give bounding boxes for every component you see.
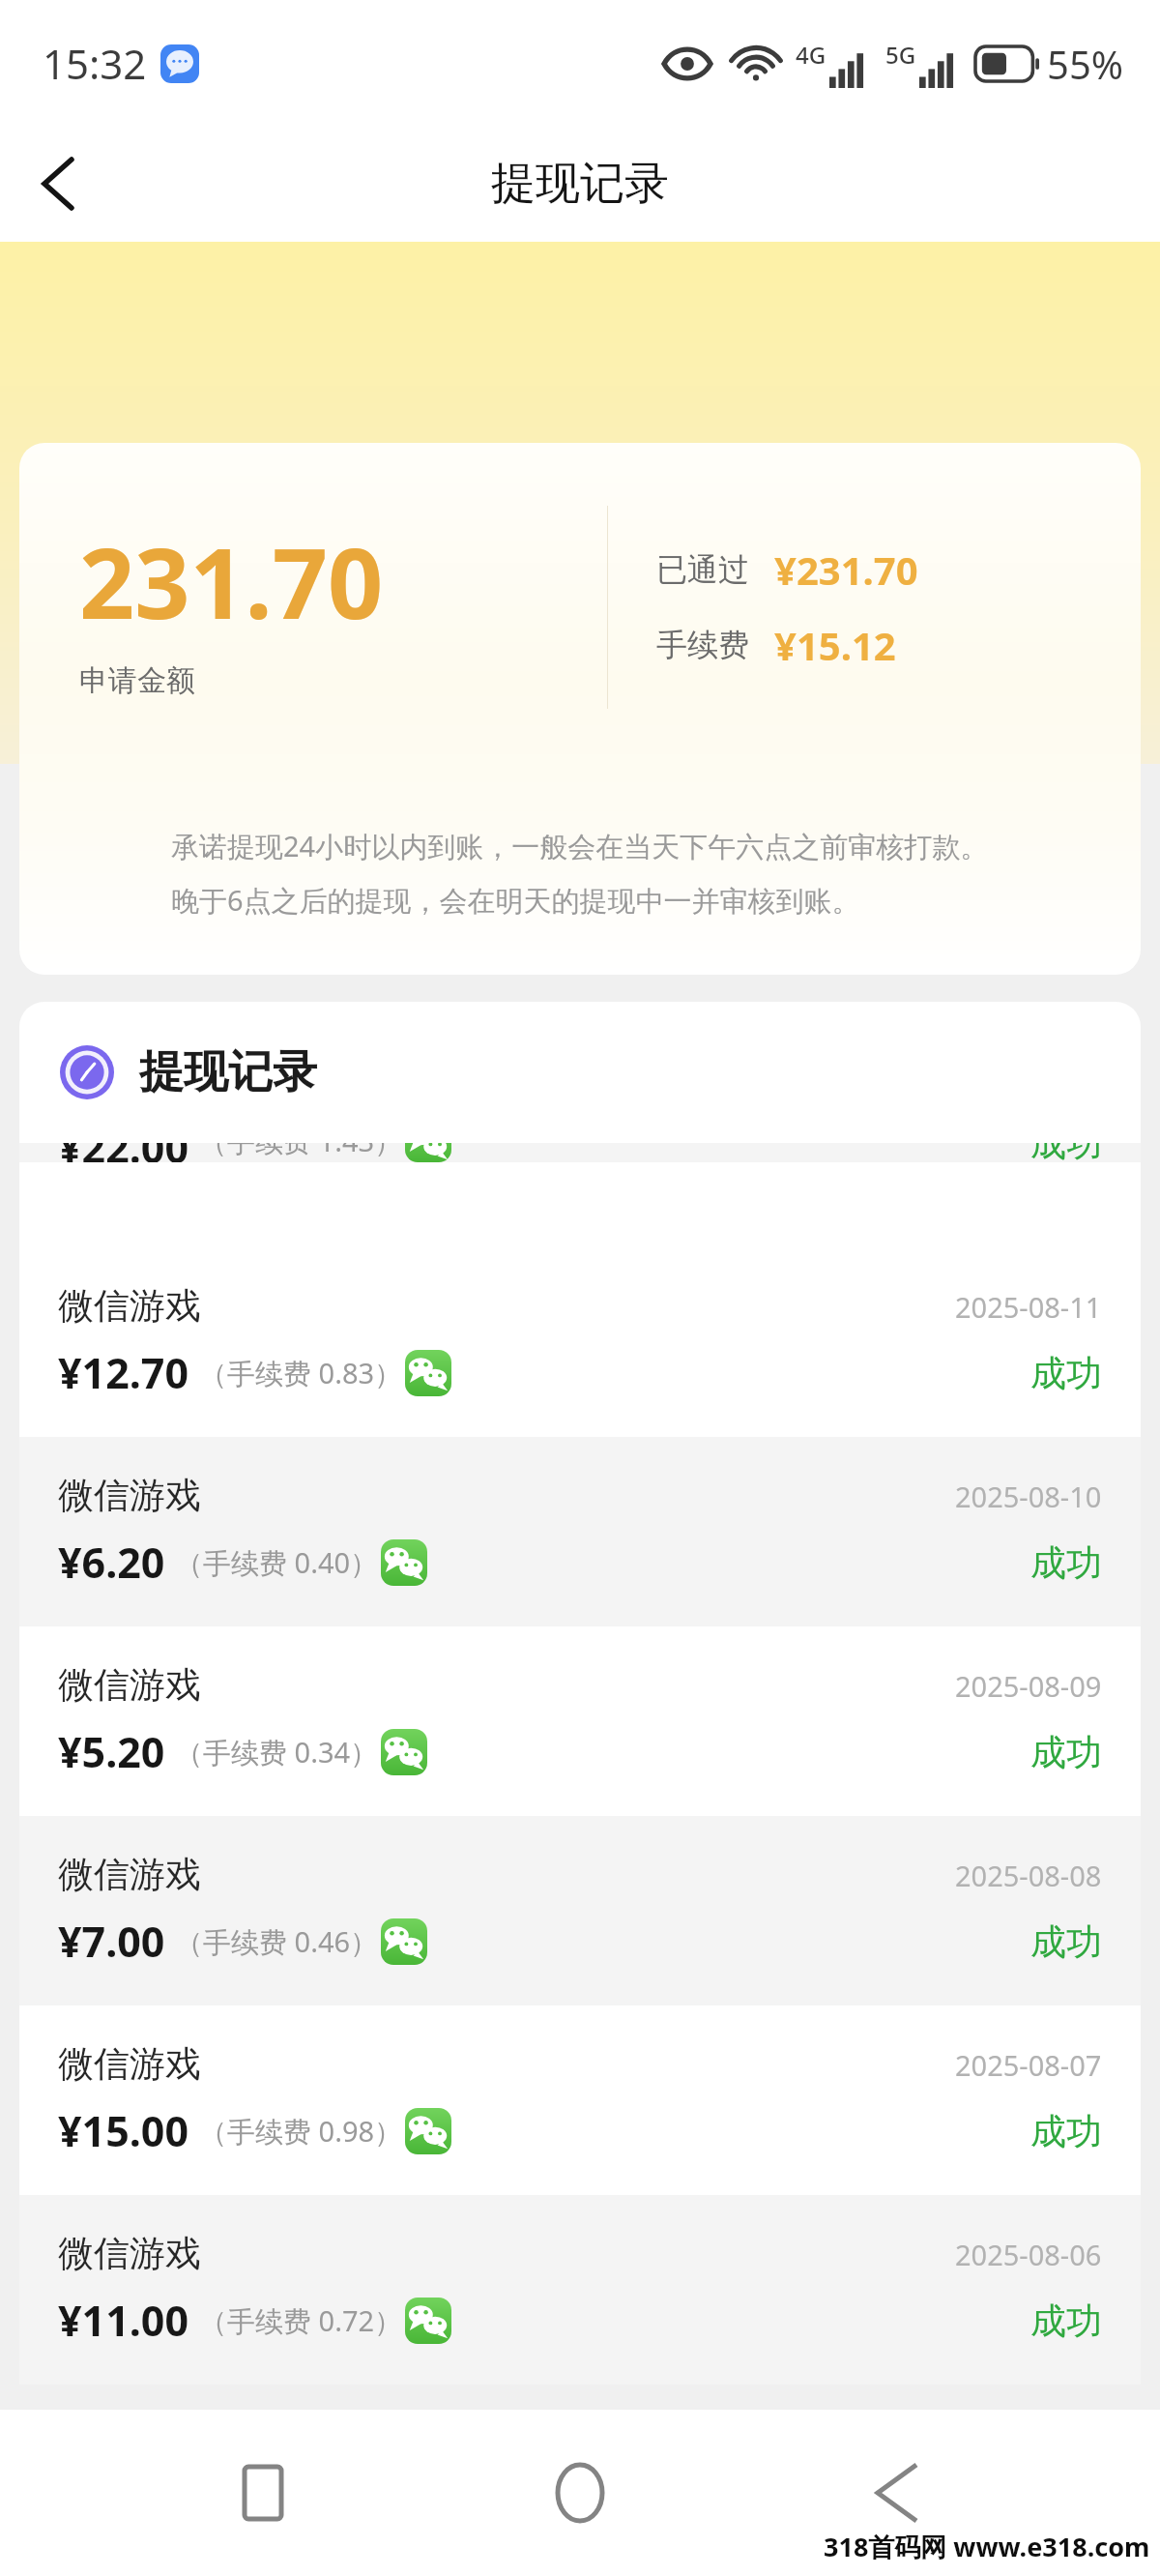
staticText: 微信游戏 xyxy=(58,1662,201,1708)
staticText: 2025-08-07 xyxy=(955,2046,1102,2084)
staticText: （手续费 0.98） xyxy=(199,2112,403,2151)
staticText: 已通过 xyxy=(656,550,749,589)
staticText: ¥22.00 xyxy=(58,1143,189,1162)
staticText: 2025-08-11 xyxy=(955,1288,1102,1326)
staticText: 微信游戏 xyxy=(58,1473,201,1518)
staticText: 提现记录 xyxy=(139,1044,317,1100)
staticText: （手续费 0.46） xyxy=(175,1922,379,1961)
staticText: 2025-08-08 xyxy=(955,1857,1102,1894)
button[interactable]: 微信游戏 xyxy=(19,1437,1141,1626)
staticText: 成功 xyxy=(1030,1540,1102,1586)
staticText: 申请金额 xyxy=(79,662,195,699)
button[interactable]: Back xyxy=(15,141,101,226)
staticText: ¥11.00 xyxy=(58,2292,189,2349)
button[interactable]: Home xyxy=(526,2439,634,2547)
staticText: ¥15.00 xyxy=(58,2102,189,2159)
staticText: ¥231.70 xyxy=(774,543,918,596)
staticText: 2025-08-10 xyxy=(955,1478,1102,1515)
staticText: （手续费 1.43） xyxy=(199,1143,403,1160)
staticText: 2025-08-06 xyxy=(955,2236,1102,2273)
staticText: 成功 xyxy=(1030,1730,1102,1775)
staticText: 成功 xyxy=(1030,1143,1102,1162)
staticText: 231.70 xyxy=(79,515,384,647)
staticText: 成功 xyxy=(1030,2298,1102,2344)
button[interactable]: Recent apps xyxy=(209,2439,317,2547)
staticText: 微信游戏 xyxy=(58,2041,201,2087)
button[interactable]: 微信游戏 xyxy=(19,1816,1141,2005)
staticText: 2025-08-09 xyxy=(955,1667,1102,1705)
staticText: 微信游戏 xyxy=(58,2231,201,2276)
staticText: （手续费 0.34） xyxy=(175,1733,379,1771)
staticText: 318首码网 www.e318.com xyxy=(824,2529,1150,2564)
staticText: （手续费 0.83） xyxy=(199,1354,403,1392)
staticText: （手续费 0.72） xyxy=(199,2301,403,2340)
staticText: ¥15.12 xyxy=(774,619,896,671)
staticText: 提现记录 xyxy=(491,156,669,212)
button[interactable]: 微信游戏 xyxy=(19,1143,1141,1162)
staticText: 成功 xyxy=(1030,1351,1102,1396)
staticText: 55% xyxy=(1047,38,1123,90)
staticText: （手续费 0.40） xyxy=(175,1543,379,1582)
staticText: ¥7.00 xyxy=(58,1913,165,1970)
staticText: 15:32 xyxy=(43,36,147,91)
staticText: 5G xyxy=(885,39,916,71)
button[interactable]: 微信游戏 xyxy=(19,1247,1141,1437)
staticText: ¥12.70 xyxy=(58,1344,189,1401)
staticText: ¥6.20 xyxy=(58,1534,165,1591)
button[interactable]: 微信游戏 xyxy=(19,1626,1141,1816)
button[interactable]: Back xyxy=(843,2439,951,2547)
staticText: ¥5.20 xyxy=(58,1723,165,1780)
staticText: 微信游戏 xyxy=(58,1852,201,1897)
staticText: 手续费 xyxy=(656,626,749,664)
staticText: 成功 xyxy=(1030,1919,1102,1965)
staticText: 微信游戏 xyxy=(58,1283,201,1329)
button[interactable]: 微信游戏 xyxy=(19,2005,1141,2195)
staticText: 晚于6点之后的提现，会在明天的提现中一并审核到账。 xyxy=(171,881,860,920)
staticText: 4G xyxy=(796,39,826,71)
button[interactable]: 微信游戏 xyxy=(19,2195,1141,2385)
staticText: 承诺提现24小时以内到账，一般会在当天下午六点之前审核打款。 xyxy=(171,827,989,865)
staticText: 成功 xyxy=(1030,2109,1102,2154)
